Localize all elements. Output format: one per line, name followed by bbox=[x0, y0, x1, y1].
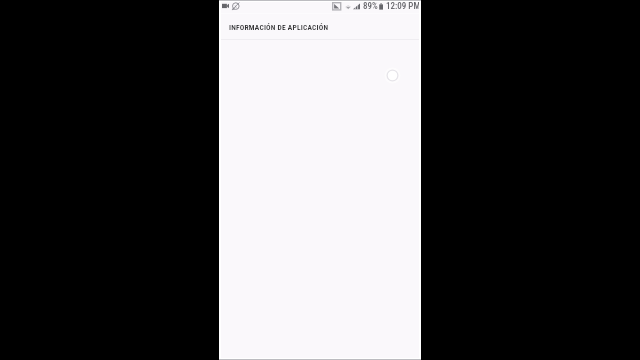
staticText: 12:09 PM bbox=[386, 1, 421, 12]
other: Screenshot captured bbox=[332, 2, 341, 11]
staticText: 89% bbox=[363, 1, 378, 12]
other: Wi-Fi bbox=[345, 2, 352, 11]
other: Loading bbox=[383, 66, 402, 85]
other: Screen recorder running bbox=[222, 3, 229, 9]
other: Mobile signal bbox=[353, 3, 360, 10]
staticText: INFORMACIÓN DE APLICACIÓN bbox=[229, 23, 329, 32]
other: Battery 89 percent bbox=[379, 3, 383, 11]
other: WhatsApp notifications silenced bbox=[232, 2, 240, 11]
button[interactable]: INFORMACIÓN DE APLICACIÓN bbox=[219, 14, 421, 40]
